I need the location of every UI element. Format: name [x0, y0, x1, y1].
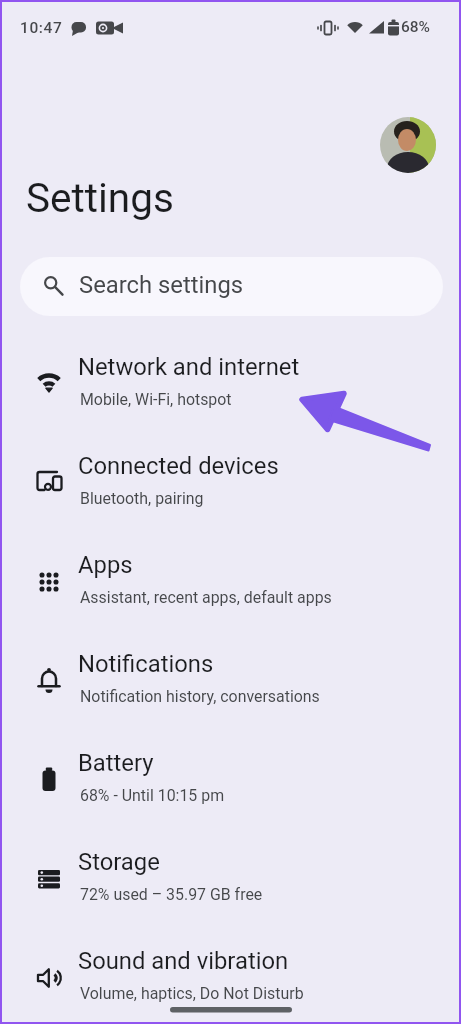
staticText: Notifications [78, 650, 214, 678]
staticText: Assistant, recent apps, default apps [80, 588, 332, 607]
staticText: Bluetooth, pairing [80, 489, 204, 508]
button[interactable] [0, 736, 461, 835]
staticText: Connected devices [78, 452, 279, 480]
staticText: 72% used – 35.97 GB free [80, 885, 263, 904]
button[interactable] [20, 257, 443, 316]
button[interactable] [0, 934, 461, 1024]
staticText: 68% [401, 18, 431, 36]
button[interactable] [0, 637, 461, 736]
button[interactable] [0, 340, 461, 439]
button[interactable] [0, 835, 461, 934]
staticText: 68% - Until 10:15 pm [80, 786, 225, 805]
button[interactable] [0, 538, 461, 637]
staticText: Battery [78, 749, 154, 777]
button[interactable] [0, 439, 461, 538]
staticText: Sound and vibration [78, 947, 289, 975]
staticText: 10:47 [20, 19, 63, 37]
staticText: Notification history, conversations [80, 687, 320, 706]
staticText: Apps [78, 551, 133, 579]
staticText: Storage [78, 848, 160, 876]
staticText: Settings [26, 174, 174, 221]
staticText: Mobile, Wi-Fi, hotspot [80, 390, 232, 409]
staticText: Network and internet [78, 353, 300, 381]
button[interactable] [380, 117, 436, 173]
staticText: Search settings [79, 271, 244, 299]
staticText: Volume, haptics, Do Not Disturb [80, 984, 304, 1003]
